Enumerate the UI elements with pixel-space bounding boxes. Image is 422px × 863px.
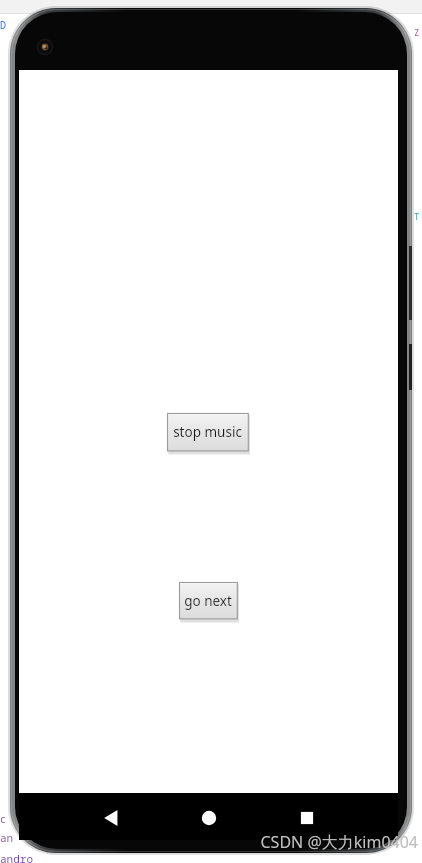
staticText: D [0, 18, 6, 32]
staticText: an [0, 830, 14, 845]
staticText: c [0, 812, 6, 826]
staticText: T [414, 210, 420, 222]
staticText: go next [184, 592, 232, 610]
staticText: stop music [173, 423, 242, 441]
staticText: andro [0, 851, 33, 863]
button[interactable]: Back [86, 795, 136, 839]
button[interactable]: stop music [167, 413, 250, 453]
button[interactable]: go next [179, 582, 239, 621]
button[interactable]: Recent apps [282, 795, 332, 839]
staticText: CSDN @大力kim0404 [222, 831, 418, 853]
button[interactable]: Home [184, 795, 234, 839]
staticText: Z [414, 26, 420, 38]
